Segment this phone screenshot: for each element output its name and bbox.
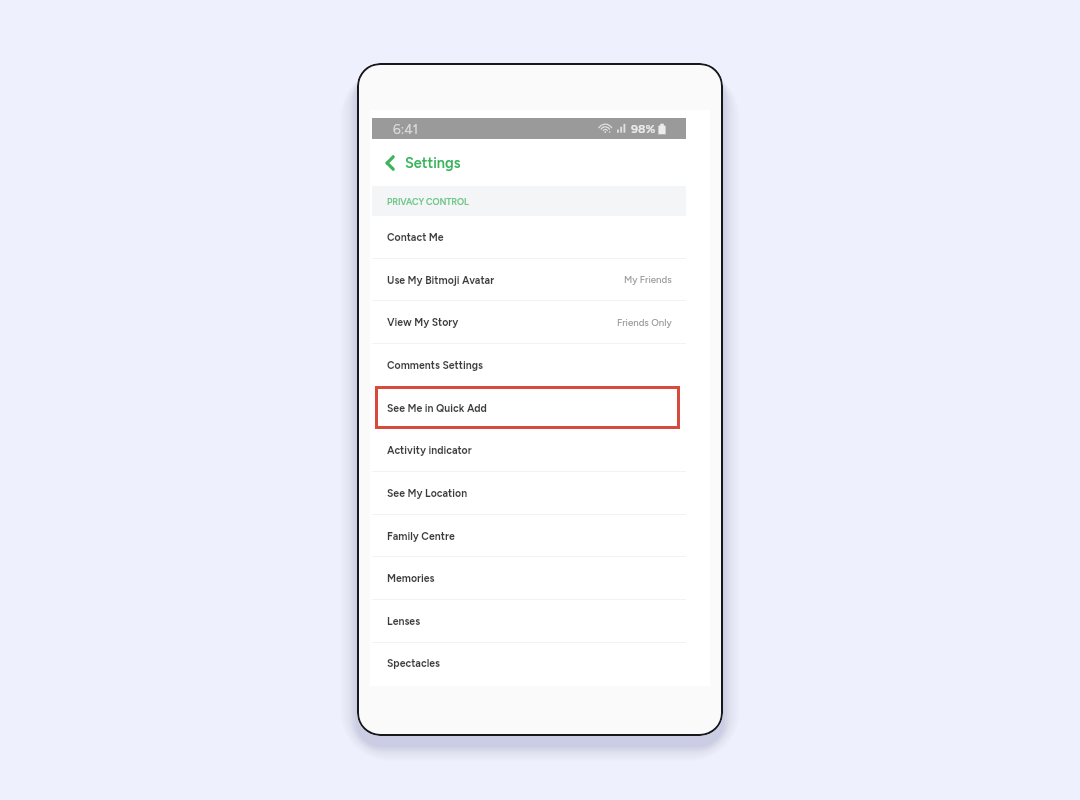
button[interactable]: Spectacles <box>372 643 686 683</box>
button[interactable]: See Me in Quick Add <box>372 387 686 429</box>
staticText: Family Centre <box>387 530 455 543</box>
staticText: Contact Me <box>387 231 444 244</box>
button[interactable]: Family Centre <box>372 515 686 557</box>
staticText: Friends Only <box>617 317 672 329</box>
staticText: 98% <box>631 121 656 136</box>
staticText: See Me in Quick Add <box>387 402 487 415</box>
button[interactable]: Memories <box>372 557 686 600</box>
staticText: 6:41 <box>393 121 419 137</box>
staticText: See My Location <box>387 487 468 500</box>
staticText: Memories <box>387 572 435 585</box>
button[interactable]: Use My Bitmoji Avatar <box>372 259 686 301</box>
button[interactable]: Comments Settings <box>372 344 686 387</box>
staticText: PRIVACY CONTROL <box>387 196 469 207</box>
staticText: Activity indicator <box>387 444 472 457</box>
staticText: View My Story <box>387 316 459 329</box>
button[interactable]: View My Story <box>372 301 686 344</box>
staticText: Lenses <box>387 615 421 628</box>
staticText: Settings <box>405 154 461 171</box>
button[interactable]: Activity indicator <box>372 429 686 472</box>
button[interactable]: Contact Me <box>372 216 686 259</box>
button[interactable]: Back <box>382 153 402 173</box>
staticText: Use My Bitmoji Avatar <box>387 274 495 287</box>
button[interactable]: Lenses <box>372 600 686 643</box>
staticText: Spectacles <box>387 657 440 670</box>
button[interactable]: See My Location <box>372 472 686 515</box>
staticText: My Friends <box>624 274 672 286</box>
staticText: Comments Settings <box>387 359 483 372</box>
